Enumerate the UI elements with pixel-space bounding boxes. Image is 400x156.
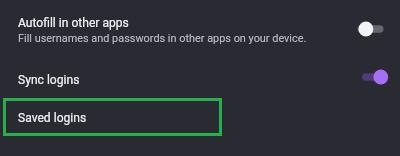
button[interactable]: Autofill in other apps toggle, off [351, 12, 395, 46]
staticText: Autofill in other apps [18, 16, 129, 30]
staticText: Fill usernames and passwords in other ap… [18, 32, 307, 45]
button[interactable]: Saved logins [3, 98, 222, 136]
staticText: Sync logins [18, 73, 351, 87]
button[interactable]: Autofill in other apps [0, 0, 400, 57]
staticText: Saved logins [18, 111, 87, 125]
button[interactable]: Sync logins [0, 64, 400, 96]
button[interactable]: Sync logins toggle, on [351, 61, 395, 93]
